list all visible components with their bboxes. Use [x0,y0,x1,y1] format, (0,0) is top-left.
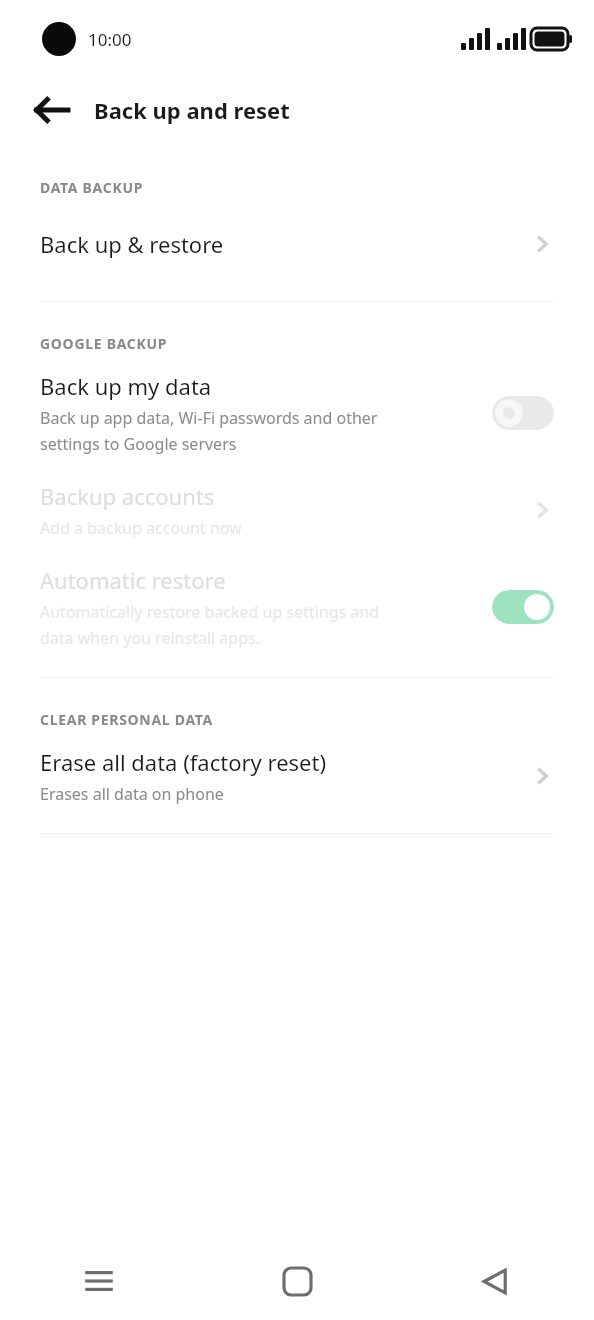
staticText: GOOGLE BACKUP [40,334,168,353]
staticText: CLEAR PERSONAL DATA [40,710,213,729]
button[interactable]: Automatic restore [0,565,594,649]
staticText: Back up my data [40,371,212,401]
button[interactable]: Home [198,1242,396,1320]
staticText: 10:00 [88,28,132,51]
staticText: Erases all data on phone [40,783,224,805]
button[interactable]: Back up & restore [0,215,594,273]
staticText: Back up and reset [94,95,290,125]
button[interactable]: Back [396,1242,594,1320]
button[interactable]: Backup accounts [0,481,594,539]
staticText: Back up app data, Wi-Fi passwords and ot… [40,407,378,455]
button[interactable]: Erase all data (factory reset) [0,747,594,805]
staticText: Add a backup account now [40,517,242,539]
button[interactable]: Recent apps [0,1242,198,1320]
staticText: Automatic restore [40,565,226,595]
staticText: Erase all data (factory reset) [40,747,327,777]
staticText: Backup accounts [40,481,215,511]
staticText: Back up & restore [40,229,224,259]
button[interactable]: Back up my data [0,371,594,455]
button[interactable]: Off [492,396,554,430]
button[interactable]: On [492,590,554,624]
staticText: DATA BACKUP [40,178,144,197]
button[interactable]: Back [22,80,82,140]
staticText: Automatically restore backed up settings… [40,601,380,649]
